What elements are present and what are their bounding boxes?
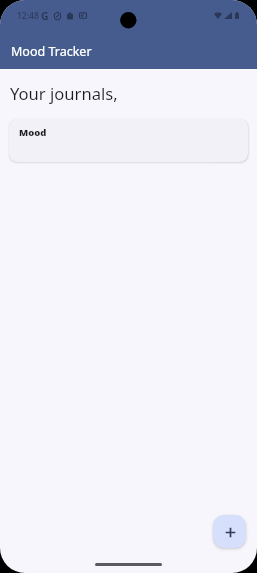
staticText: 12:48 — [17, 10, 39, 22]
staticText: Your journals, — [10, 82, 118, 105]
button[interactable]: Add journal — [213, 515, 246, 548]
staticText: Mood — [19, 126, 47, 139]
staticText: Mood Tracker — [11, 43, 92, 60]
button[interactable]: Mood — [9, 119, 248, 162]
staticText: G — [41, 9, 49, 23]
